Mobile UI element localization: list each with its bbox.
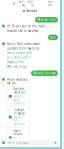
staticText: What can I do? <box>37 18 56 21</box>
staticText: your Shop order? <box>7 56 31 59</box>
staticText: Talk with a human <box>33 71 56 75</box>
staticText: updates then may help. <box>7 47 40 50</box>
staticText: Here's what you can do: <box>7 78 28 85</box>
staticText: within 30 minutes <box>13 115 24 126</box>
staticText: Got it. Your order status <box>7 42 40 46</box>
button[interactable]: Talk with a human <box>31 70 58 76</box>
staticText: Help <box>31 0 34 7</box>
button[interactable]: Home <box>13 0 16 11</box>
staticText: Need a hand with <box>7 51 32 55</box>
staticText: Search <box>48 0 53 7</box>
staticText: Sure <box>50 36 56 39</box>
staticText: Hi! To get you to the right <box>7 24 45 28</box>
staticText: Who can help? <box>7 65 27 68</box>
button[interactable]: Chats <box>19 0 25 11</box>
staticText: Write a message… <box>8 141 31 144</box>
button[interactable]: What can I do? <box>35 17 58 22</box>
staticText: Change or cancel <box>13 108 25 115</box>
staticText: Tracking info <box>7 60 24 64</box>
button[interactable]: Help <box>28 0 34 11</box>
staticText: where your order is <box>13 95 24 105</box>
button[interactable]: Search <box>48 0 53 7</box>
staticText: Standard <box>26 9 37 13</box>
staticText: Chats <box>22 0 25 7</box>
staticText: team I'd like to ask a few <box>7 29 38 33</box>
button[interactable]: Write a message… <box>6 140 58 145</box>
button[interactable]: Sure <box>48 35 58 40</box>
button[interactable]: Start a return <box>7 128 29 148</box>
button[interactable]: Change or cancel <box>7 107 29 127</box>
button[interactable]: Get the latest on <box>7 86 29 106</box>
staticText: for eligible items <box>13 136 25 147</box>
staticText: Start a return <box>13 129 22 136</box>
staticText: Get the latest on <box>13 87 25 94</box>
